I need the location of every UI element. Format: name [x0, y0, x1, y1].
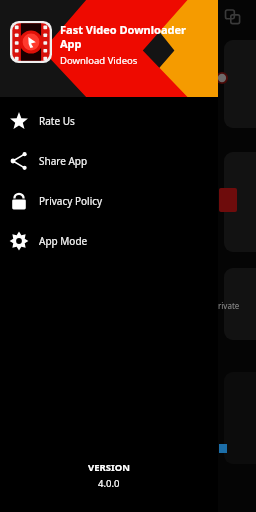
button[interactable]: Privacy Policy: [0, 181, 218, 221]
staticText: Rate Us: [39, 114, 75, 128]
button[interactable]: Rate Us: [0, 101, 218, 141]
button[interactable]: App Mode: [0, 221, 218, 261]
staticText: Privacy Policy: [39, 194, 103, 208]
staticText: Download Videos: [60, 54, 138, 67]
button[interactable]: Share App: [0, 141, 218, 181]
staticText: VERSION: [88, 461, 130, 474]
staticText: rivate: [218, 300, 240, 311]
staticText: Fast Video Downloader App: [60, 22, 210, 51]
staticText: App Mode: [39, 234, 88, 248]
staticText: Share App: [39, 154, 88, 168]
button[interactable]: Select: [222, 6, 244, 28]
staticText: 4.0.0: [98, 477, 120, 490]
